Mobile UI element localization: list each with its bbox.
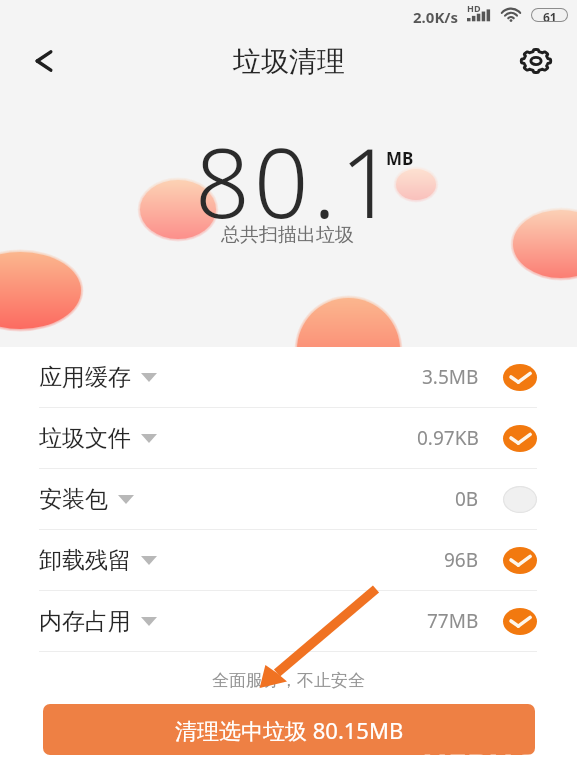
staticText: HD: [467, 2, 481, 14]
button[interactable]: 卸载残留: [0, 530, 577, 590]
staticText: MB: [386, 147, 414, 170]
staticText: 3.5MB: [422, 364, 479, 390]
button[interactable]: 应用缓存: [0, 347, 577, 407]
button[interactable]: 安装包: [0, 469, 577, 529]
staticText: 80.1: [195, 115, 399, 246]
staticText: 安装包: [39, 485, 108, 514]
staticText: 总共扫描出垃圾: [221, 223, 354, 247]
staticText: UEPHC: [422, 742, 536, 780]
staticText: 垃圾文件: [39, 424, 131, 453]
staticText: 应用缓存: [39, 363, 131, 392]
staticText: 垃圾清理: [233, 44, 345, 79]
button[interactable]: Back: [20, 37, 68, 85]
button[interactable]: 垃圾文件: [0, 408, 577, 468]
button[interactable]: Selected: [503, 608, 537, 635]
button[interactable]: Selected: [503, 364, 537, 391]
staticText: 内存占用: [39, 607, 131, 636]
staticText: 清理选中垃圾 80.15MB: [175, 715, 404, 745]
staticText: 77MB: [427, 608, 479, 634]
button[interactable]: Selected: [503, 547, 537, 574]
staticText: 全面服务，不止安全: [212, 670, 365, 691]
staticText: 61: [543, 9, 557, 21]
staticText: 卸载残留: [39, 546, 131, 575]
button[interactable]: 内存占用: [0, 591, 577, 651]
staticText: 96B: [444, 547, 479, 573]
button[interactable]: Settings: [516, 41, 556, 81]
staticText: 2.0K/s: [413, 7, 459, 27]
staticText: 0B: [455, 486, 479, 512]
button[interactable]: Not selected: [503, 486, 537, 513]
staticText: 0.97KB: [417, 425, 479, 451]
button[interactable]: Selected: [503, 425, 537, 452]
button[interactable]: 清理选中垃圾 80.15MB: [43, 704, 535, 755]
